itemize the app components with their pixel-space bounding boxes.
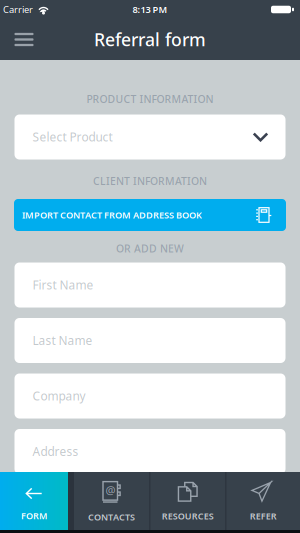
button[interactable]: @ [74,472,149,530]
staticText: RESOURCES [162,510,214,522]
button[interactable]: Last Name [14,318,285,363]
staticText: FORM [21,510,47,522]
staticText: CLIENT INFORMATION [93,174,207,188]
button[interactable]: Select Product [14,114,285,159]
button[interactable]: REFER [226,472,300,530]
staticText: PRODUCT INFORMATION [86,92,213,106]
button[interactable]: IMPORT CONTACT FROM ADDRESS BOOK [14,199,286,231]
staticText: CONTACTS [88,511,135,523]
staticText: Company [32,388,85,404]
staticText: Referral form [94,27,206,51]
button[interactable]: Company [14,373,285,418]
staticText: @ [105,482,115,498]
staticText: REFER [250,510,277,522]
button[interactable]: RESOURCES [150,472,225,530]
staticText: First Name [32,277,93,293]
button[interactable]: First Name [14,262,285,307]
button[interactable]: FORM [0,472,68,530]
button[interactable]: Menu [7,24,41,54]
staticText: OR ADD NEW [116,241,184,256]
staticText: Address [32,443,78,460]
staticText: IMPORT CONTACT FROM ADDRESS BOOK [22,209,202,221]
staticText: Select Product [32,129,112,145]
staticText: Carrier [3,3,33,16]
staticText: Last Name [32,332,92,349]
staticText: 8:13 PM [132,3,167,16]
button[interactable]: Address [14,429,285,474]
